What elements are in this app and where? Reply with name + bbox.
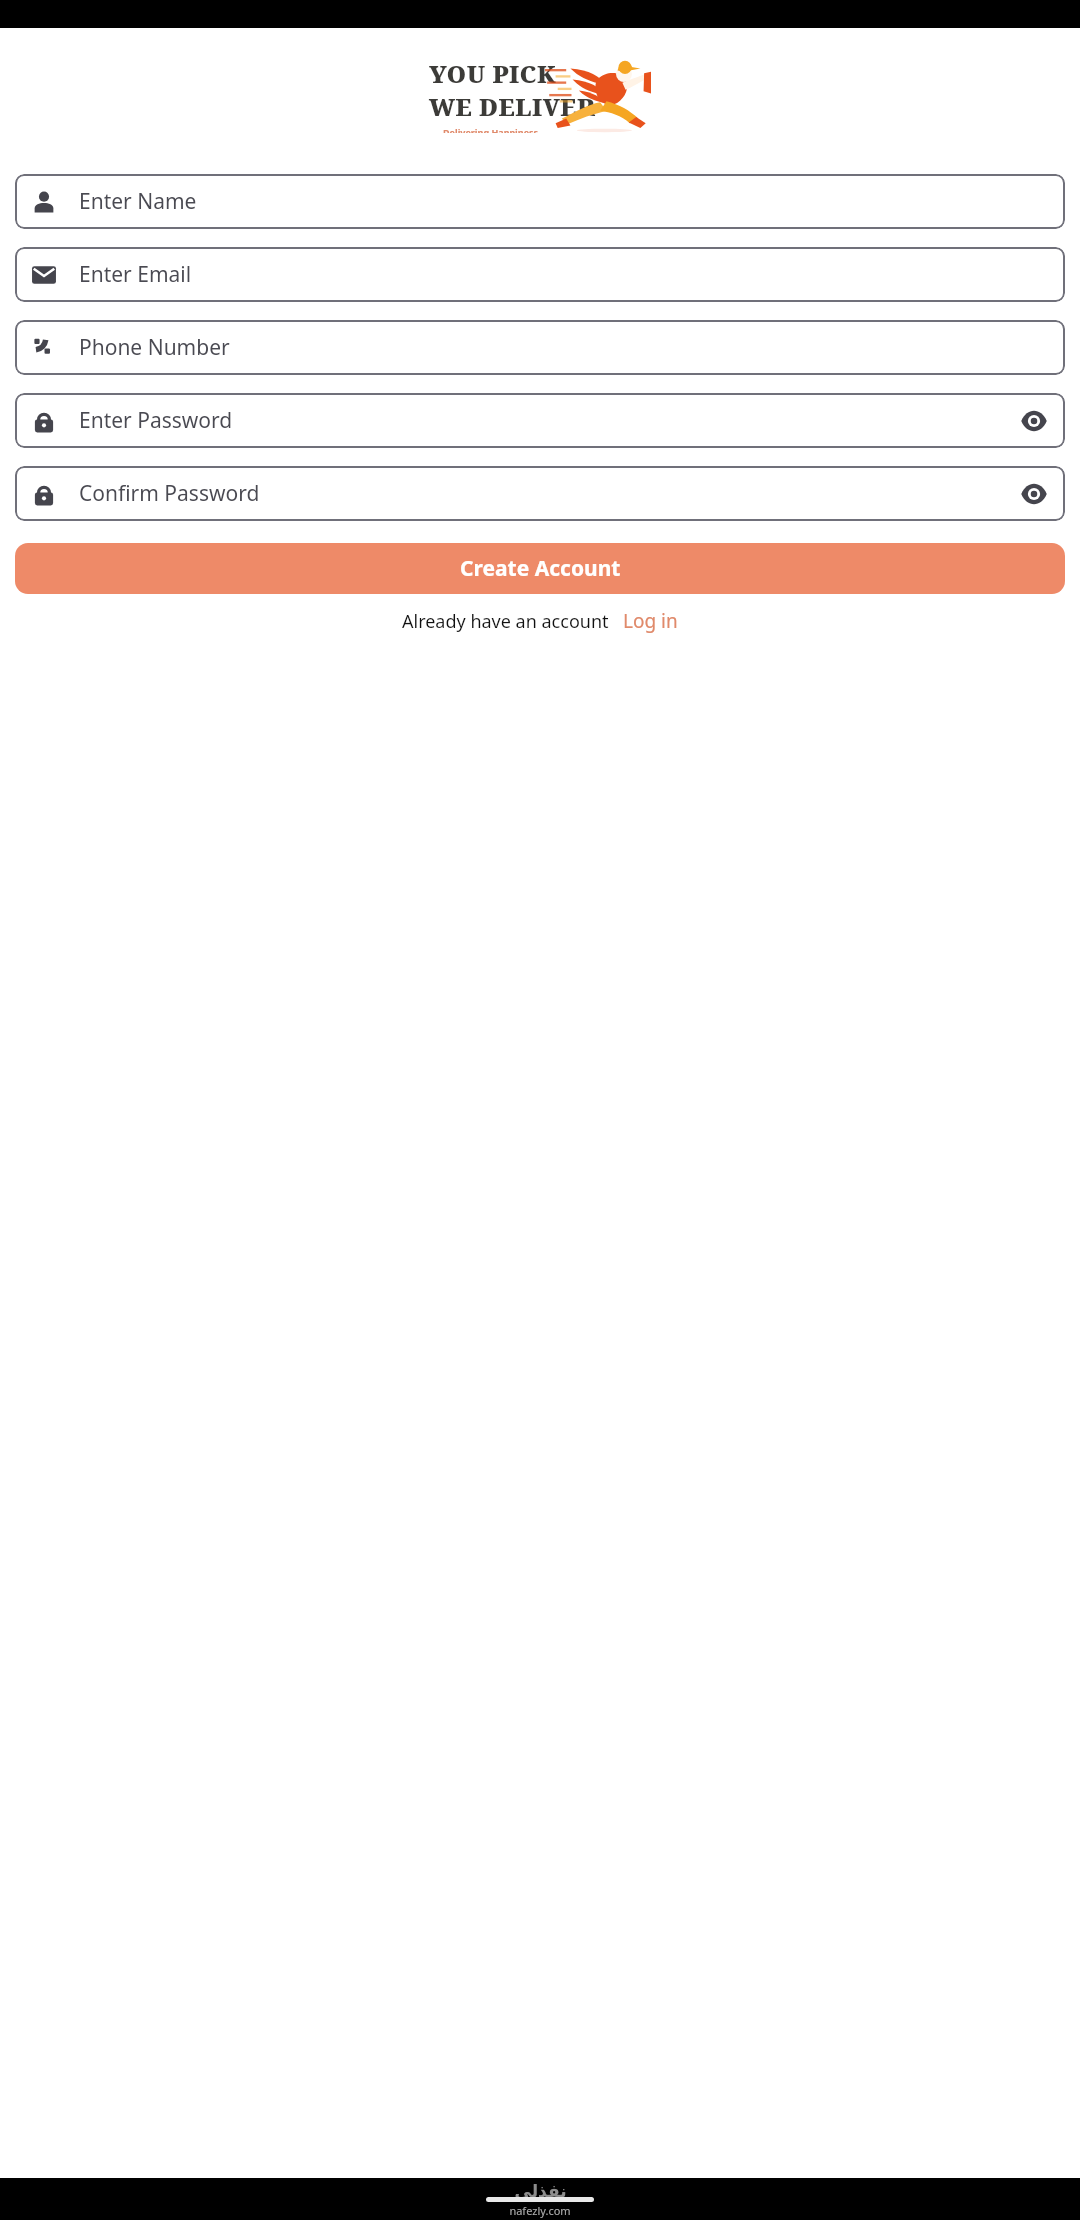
staticText: WE DELIVER — [429, 90, 596, 123]
staticText: nafezly.com — [509, 2203, 571, 2218]
staticText: Phone Number — [79, 333, 1049, 362]
staticText: Enter Email — [79, 260, 1049, 289]
staticText: Enter Name — [79, 187, 1049, 216]
staticText: Delivering Happiness — [443, 126, 539, 133]
button[interactable]: Log in — [623, 608, 678, 634]
staticText: Already have an account — [402, 609, 609, 634]
staticText: YOU PICK — [429, 57, 557, 90]
button[interactable]: Create Account — [15, 543, 1065, 594]
button[interactable]: Toggle password visibility — [1019, 479, 1049, 509]
staticText: نفذلي — [514, 2181, 567, 2201]
button[interactable]: Toggle password visibility — [1019, 406, 1049, 436]
button[interactable]: Phone Number — [15, 320, 1065, 375]
staticText: Create Account — [460, 554, 621, 583]
button[interactable]: Enter Password — [15, 393, 1065, 448]
staticText: Enter Password — [79, 406, 1019, 435]
staticText: Log in — [623, 608, 678, 634]
button[interactable]: Confirm Password — [15, 466, 1065, 521]
button[interactable]: Enter Name — [15, 174, 1065, 229]
button[interactable]: Enter Email — [15, 247, 1065, 302]
staticText: Confirm Password — [79, 479, 1019, 508]
